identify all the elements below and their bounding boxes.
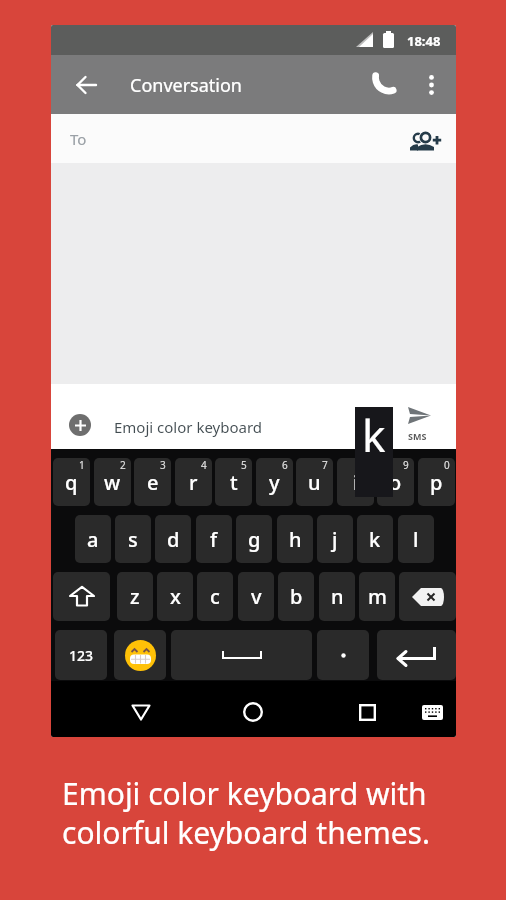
button[interactable]: s [115,515,151,563]
button[interactable] [114,630,166,680]
staticText: w [104,469,121,496]
button[interactable]: i [337,458,374,506]
staticText: e [147,469,159,496]
button[interactable] [69,414,91,436]
staticText: Conversation [130,73,242,98]
button[interactable]: j [317,515,353,563]
staticText: f [210,526,218,553]
staticText: d [167,526,180,553]
staticText: h [289,526,302,553]
button[interactable] [377,630,456,680]
staticText: u [308,469,321,496]
staticText: Emoji color keyboard [114,417,263,437]
staticText: v [251,583,262,610]
staticText: o [389,469,402,496]
staticText: 9 [403,458,409,472]
button[interactable]: m [359,572,395,621]
button[interactable]: o [377,458,414,506]
staticText: 5 [241,458,247,472]
staticText: t [230,469,238,496]
button[interactable] [412,63,451,107]
button[interactable] [53,572,110,621]
staticText: 3 [160,458,166,472]
staticText: 6 [282,458,288,472]
staticText: 123 [69,646,94,665]
button[interactable]: SMS [397,402,445,448]
staticText: g [248,526,261,553]
staticText: n [331,583,344,610]
button[interactable]: n [319,572,355,621]
staticText: z [130,583,140,610]
staticText: l [413,526,419,553]
button[interactable]: k [357,515,393,563]
button[interactable] [231,697,275,727]
button[interactable] [171,630,312,680]
button[interactable] [119,697,163,727]
button[interactable] [65,63,107,107]
staticText: Emoji color keyboard with [62,773,427,814]
button[interactable]: l [398,515,434,563]
staticText: c [210,583,220,610]
staticText: 1 [79,458,85,472]
button[interactable]: 123 [55,630,107,680]
button[interactable] [362,63,406,107]
button[interactable]: f [196,515,232,563]
button[interactable]: d [155,515,191,563]
staticText: m [368,583,387,610]
staticText: s [128,526,138,553]
staticText: k [362,405,386,465]
staticText: y [269,469,280,496]
staticText: r [189,469,198,496]
staticText: a [87,526,99,553]
staticText: 4 [201,458,207,472]
staticText: b [290,583,303,610]
button[interactable]: q [53,458,90,506]
button[interactable]: y [256,458,293,506]
staticText: 0 [444,458,450,472]
staticText: 2 [120,458,126,472]
button[interactable]: p [418,458,455,506]
button[interactable]: w [94,458,131,506]
button[interactable]: r [175,458,212,506]
button[interactable] [317,630,369,680]
button[interactable]: z [117,572,153,621]
staticText: p [430,469,443,496]
staticText: x [170,583,181,610]
button[interactable]: g [236,515,272,563]
staticText: k [369,526,381,553]
button[interactable]: h [277,515,313,563]
button[interactable]: c [197,572,233,621]
button[interactable]: a [75,515,111,563]
button[interactable] [345,697,389,727]
staticText: j [332,526,338,553]
button[interactable] [417,700,447,724]
button[interactable]: x [157,572,193,621]
button[interactable]: t [215,458,252,506]
button[interactable]: To [51,114,456,163]
button[interactable] [399,572,456,621]
button[interactable]: v [238,572,274,621]
staticText: q [65,469,78,496]
staticText: 18:48 [407,32,441,50]
staticText: 7 [322,458,328,472]
staticText: i [353,469,359,496]
staticText: SMS [408,430,427,442]
button[interactable]: e [134,458,171,506]
button[interactable]: u [296,458,333,506]
staticText: colorful keyboard themes. [62,812,431,853]
button[interactable]: b [278,572,314,621]
staticText: To [70,129,87,149]
